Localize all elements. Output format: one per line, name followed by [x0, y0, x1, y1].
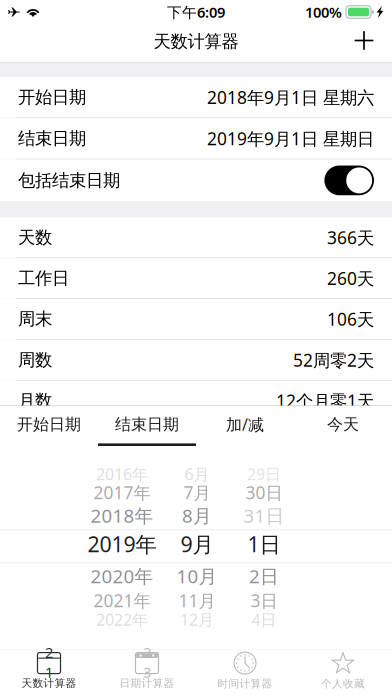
staticText: 30日	[245, 481, 282, 504]
button[interactable]: 包括结束日期	[0, 159, 392, 201]
staticText: 2018年9月1日 星期六	[207, 85, 374, 109]
staticText: 月数	[18, 390, 52, 412]
staticText: 11月	[178, 589, 215, 612]
staticText: 天数计算器	[21, 677, 76, 690]
staticText: 260天	[327, 266, 374, 290]
staticText: 周数	[18, 349, 52, 371]
staticText: 包括结束日期	[18, 169, 120, 191]
staticText: 2017年	[93, 481, 150, 504]
staticText: 结束日期	[115, 414, 179, 434]
staticText: 2日	[249, 563, 279, 589]
staticText: 366天	[327, 226, 374, 249]
staticText: 日期计算器	[119, 677, 174, 690]
button[interactable]: 开始日期	[0, 77, 392, 118]
staticText: 10月	[176, 563, 217, 589]
staticText: 7月	[183, 481, 210, 504]
staticText: 6月	[184, 463, 209, 485]
staticText: 开始日期	[18, 86, 86, 108]
button[interactable]: 今天	[294, 406, 392, 446]
staticText: 8月	[182, 503, 212, 528]
staticText: 个人收藏	[321, 677, 365, 690]
staticText: 工作日	[18, 267, 69, 289]
button[interactable]: 结束日期	[98, 406, 196, 446]
button[interactable]: 21	[0, 649, 98, 696]
staticText: 2020年	[90, 563, 153, 589]
staticText: 2021年	[93, 589, 150, 612]
staticText: 今天	[327, 414, 359, 434]
staticText: 8784小时	[300, 430, 374, 453]
staticText: 100%	[305, 2, 342, 22]
button[interactable]: 天数	[0, 217, 392, 258]
staticText: 天数	[18, 227, 52, 248]
staticText: 时间计算器	[217, 677, 272, 690]
staticText: 2016年	[96, 463, 148, 485]
staticText: 31日	[243, 503, 284, 528]
staticText: 12月	[180, 609, 214, 630]
button[interactable]: Add	[342, 21, 386, 59]
staticText: 23	[143, 642, 151, 682]
staticText: 29日	[247, 463, 281, 485]
staticText: 天数计算器	[153, 31, 238, 52]
staticText: 2018年	[90, 503, 153, 528]
button[interactable]: 工作日	[0, 258, 392, 298]
button[interactable]: 结束日期	[0, 118, 392, 159]
staticText: 106天	[327, 307, 374, 331]
staticText: 加/减	[226, 413, 264, 435]
button[interactable]: 月数	[0, 381, 392, 421]
staticText: 周末	[18, 308, 52, 330]
staticText: 21	[45, 642, 53, 682]
staticText: 结束日期	[18, 128, 86, 149]
staticText: 4日	[251, 609, 276, 630]
staticText: 2019年	[87, 529, 156, 559]
staticText: 2022年	[96, 609, 148, 630]
staticText: 开始日期	[17, 414, 81, 434]
button[interactable]: 周末	[0, 299, 392, 339]
staticText: 2019年9月1日 星期日	[207, 127, 374, 150]
staticText: 12个月零1天	[276, 389, 374, 412]
button[interactable]: 开始日期	[0, 406, 98, 446]
staticText: 小时	[18, 431, 52, 452]
button[interactable]: 个人收藏	[294, 649, 392, 696]
button[interactable]: 小时	[0, 421, 392, 462]
button[interactable]: 周数	[0, 340, 392, 380]
button[interactable]: 时间计算器	[196, 649, 294, 696]
staticText: 9月	[180, 529, 213, 559]
staticText: 1日	[247, 529, 280, 559]
staticText: 52周零2天	[293, 348, 374, 372]
staticText: 下午6:09	[167, 2, 225, 22]
staticText: 3日	[250, 589, 277, 612]
button[interactable]: 23	[98, 649, 196, 696]
button[interactable]: 加/减	[196, 406, 294, 446]
